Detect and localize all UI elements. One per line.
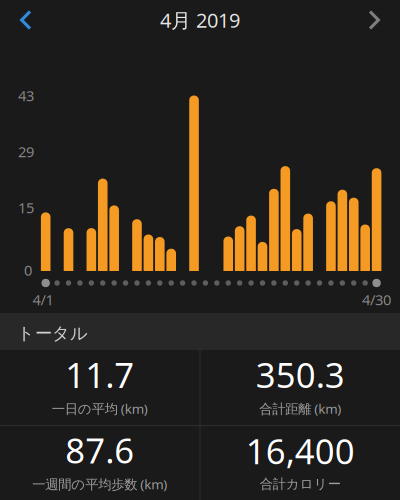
button[interactable]: 87.6 <box>0 426 199 500</box>
button[interactable]: 11.7 <box>0 350 199 425</box>
staticText: 一日の平均 (km) <box>52 400 148 417</box>
staticText: 4月 2019 <box>160 7 240 33</box>
button[interactable]: 16,400 <box>200 426 400 500</box>
staticText: 4/30 <box>362 290 391 309</box>
staticText: 一週間の平均歩数 (km) <box>32 475 167 493</box>
staticText: 350.3 <box>256 352 345 398</box>
staticText: 29 <box>18 142 34 161</box>
staticText: 4/1 <box>32 290 53 309</box>
staticText: 15 <box>18 198 34 217</box>
staticText: 16,400 <box>246 428 355 474</box>
staticText: 11.7 <box>65 352 134 398</box>
staticText: 合計距離 (km) <box>259 400 341 417</box>
button[interactable]: 350.3 <box>200 350 400 425</box>
staticText: 0 <box>24 260 32 280</box>
staticText: 合計カロリー <box>260 476 341 492</box>
staticText: 43 <box>18 86 34 105</box>
staticText: トータル <box>17 323 88 344</box>
button[interactable]: Next month <box>352 0 396 40</box>
staticText: 87.6 <box>65 427 134 473</box>
button[interactable]: Previous month <box>4 0 48 40</box>
